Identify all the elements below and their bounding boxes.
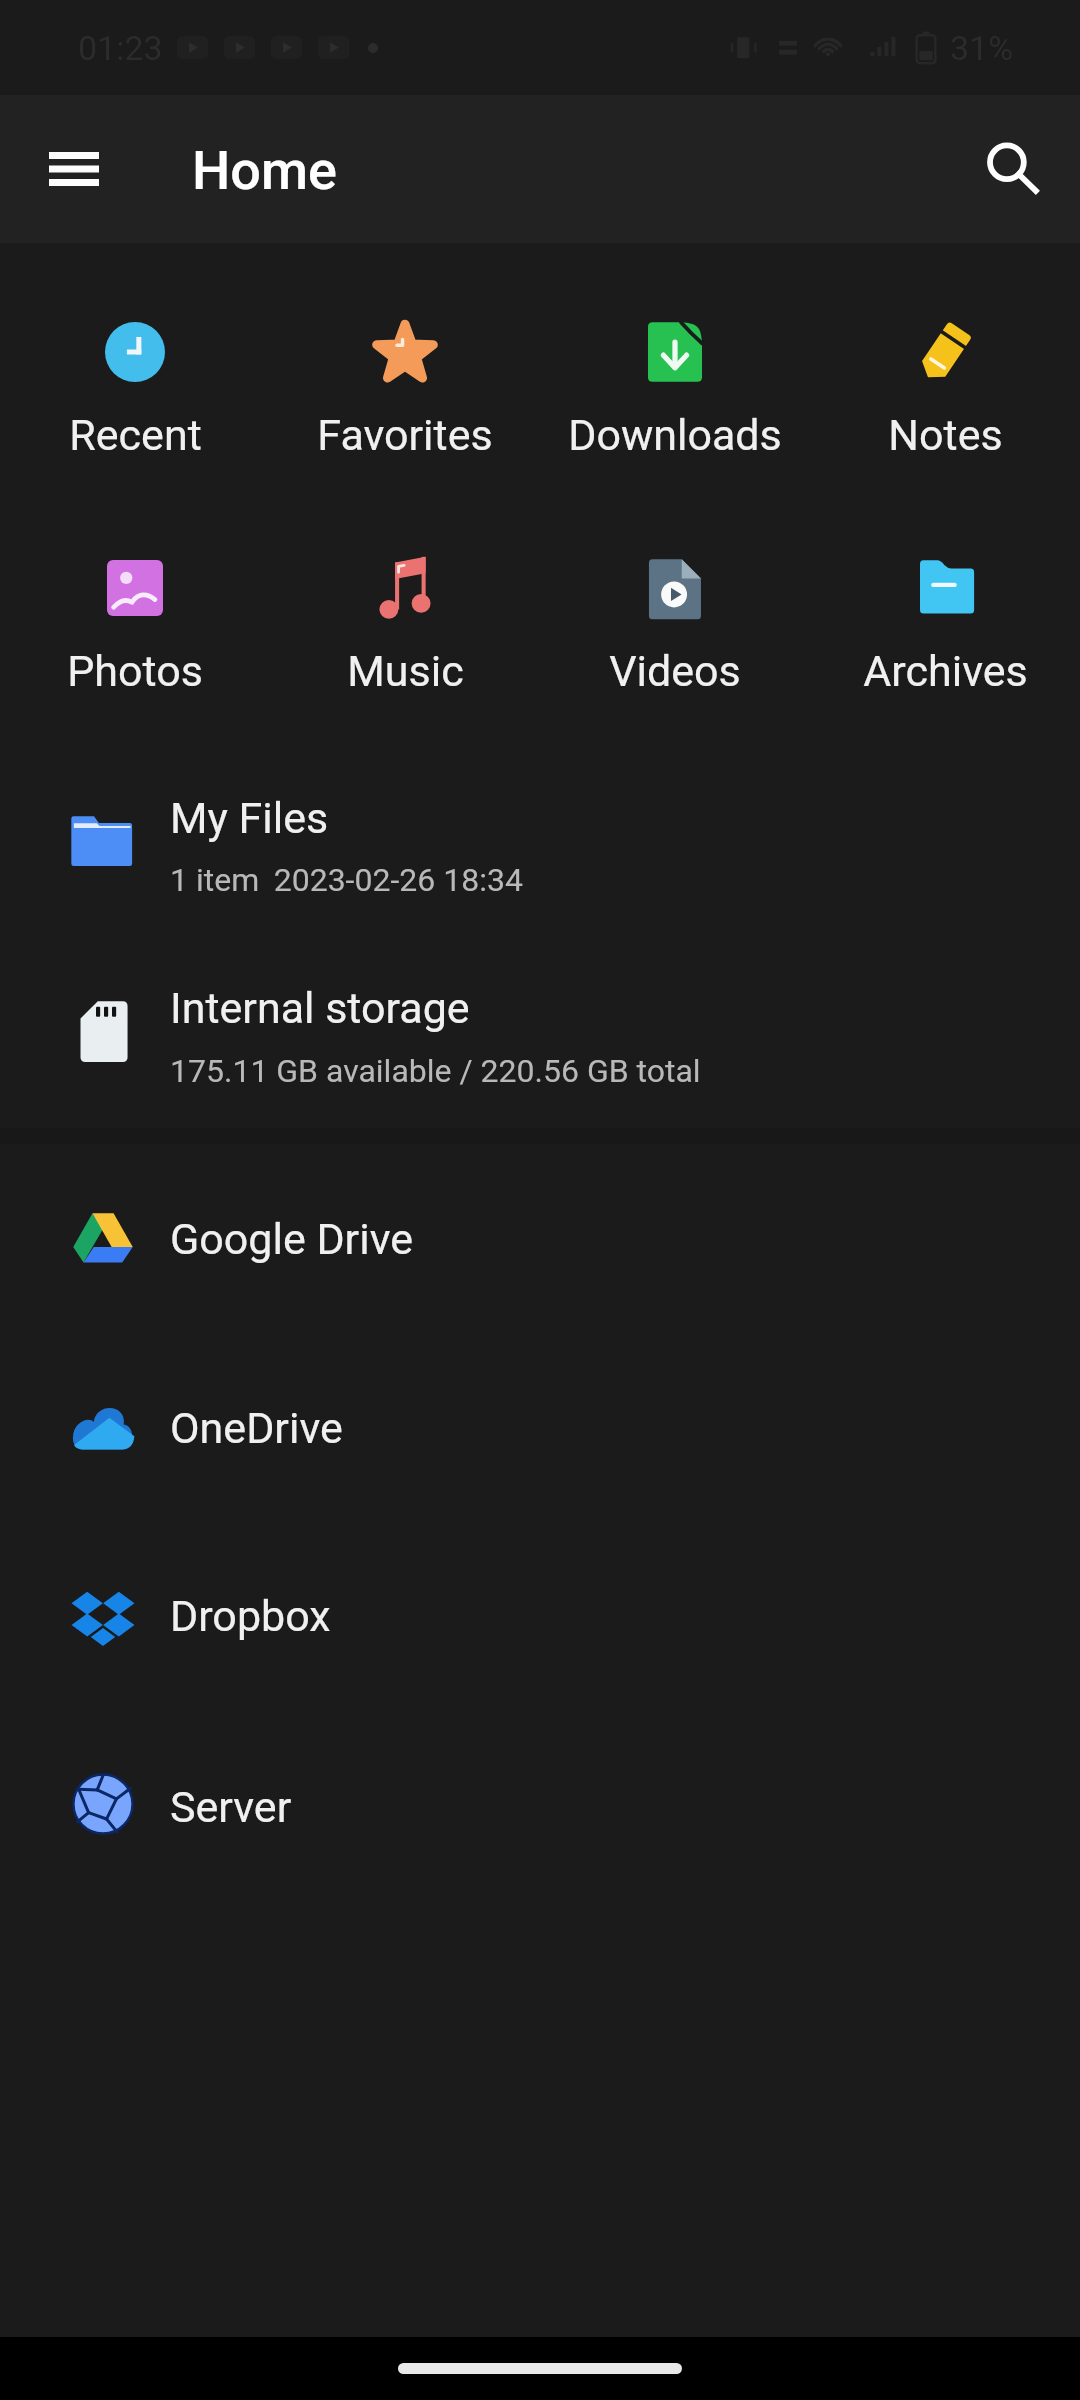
- staticText: Recent: [69, 410, 202, 460]
- button[interactable]: Search: [962, 117, 1066, 221]
- staticText: Notes: [888, 410, 1003, 460]
- staticText: Dropbox: [170, 1591, 331, 1641]
- button[interactable]: Recent: [0, 301, 270, 464]
- staticText: Music: [347, 646, 464, 696]
- button[interactable]: Favorites: [270, 301, 540, 464]
- staticText: 31%: [950, 28, 1014, 68]
- button[interactable]: Notes: [810, 301, 1080, 464]
- button[interactable]: Photos: [0, 537, 270, 700]
- staticText: Favorites: [317, 410, 493, 460]
- staticText: Home: [192, 139, 337, 202]
- staticText: 175.11 GB available / 220.56 GB total: [170, 1052, 701, 1090]
- button[interactable]: My Files: [0, 760, 1080, 950]
- staticText: Videos: [609, 646, 741, 696]
- button[interactable]: Open navigation menu: [26, 121, 122, 217]
- button[interactable]: Downloads: [540, 301, 810, 464]
- staticText: Internal storage: [170, 983, 470, 1033]
- staticText: Photos: [67, 646, 203, 696]
- button[interactable]: Dropbox: [0, 1523, 1080, 1712]
- staticText: Archives: [863, 646, 1028, 696]
- button[interactable]: Internal storage: [0, 950, 1080, 1140]
- staticText: OneDrive: [170, 1403, 343, 1453]
- staticText: Google Drive: [170, 1214, 414, 1264]
- button[interactable]: Archives: [810, 537, 1080, 700]
- staticText: Downloads: [568, 410, 782, 460]
- staticText: 1 item 2023-02-26 18:34: [170, 861, 523, 899]
- button[interactable]: Server: [0, 1712, 1080, 1901]
- button[interactable]: Videos: [540, 537, 810, 700]
- button[interactable]: Google Drive: [0, 1145, 1080, 1334]
- button[interactable]: OneDrive: [0, 1334, 1080, 1523]
- staticText: 01:23: [78, 28, 163, 68]
- staticText: My Files: [170, 793, 329, 843]
- staticText: Server: [170, 1782, 292, 1832]
- button[interactable]: Music: [270, 537, 540, 700]
